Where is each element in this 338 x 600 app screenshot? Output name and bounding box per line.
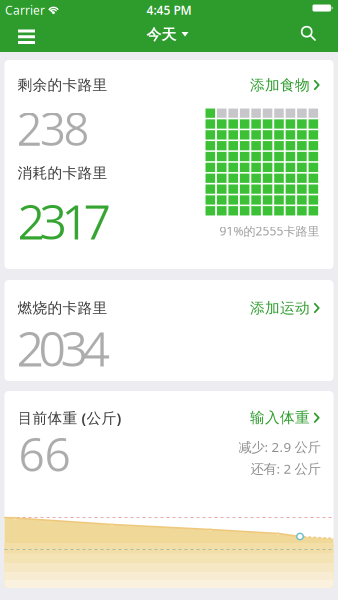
button[interactable]: 输入体重 <box>250 409 319 427</box>
staticText: 还有: 2 公斤 <box>250 460 320 477</box>
staticText: 添加食物 <box>250 76 310 94</box>
staticText: 2034 <box>16 316 109 380</box>
staticText: 减少: 2.9 公斤 <box>238 438 320 456</box>
staticText: 4:45 PM <box>146 2 191 18</box>
staticText: 添加运动 <box>250 299 310 317</box>
staticText: 66 <box>18 423 70 484</box>
staticText: 目前体重 (公斤) <box>17 408 121 427</box>
staticText: Carrier <box>5 2 45 18</box>
staticText: 2317 <box>17 189 110 253</box>
staticText: 91%的2555卡路里 <box>219 223 319 239</box>
button[interactable]: 添加食物 <box>250 76 319 94</box>
staticText: 238 <box>16 98 89 158</box>
staticText: 剩余的卡路里 <box>17 76 107 94</box>
staticText: 输入体重 <box>250 409 310 427</box>
staticText: 燃烧的卡路里 <box>17 299 107 317</box>
staticText: 今天 <box>146 25 176 43</box>
button[interactable] <box>0 20 45 52</box>
button[interactable]: 添加运动 <box>250 299 319 317</box>
button[interactable] <box>295 20 338 52</box>
button[interactable]: 今天 <box>148 27 190 45</box>
staticText: 消耗的卡路里 <box>17 164 107 182</box>
